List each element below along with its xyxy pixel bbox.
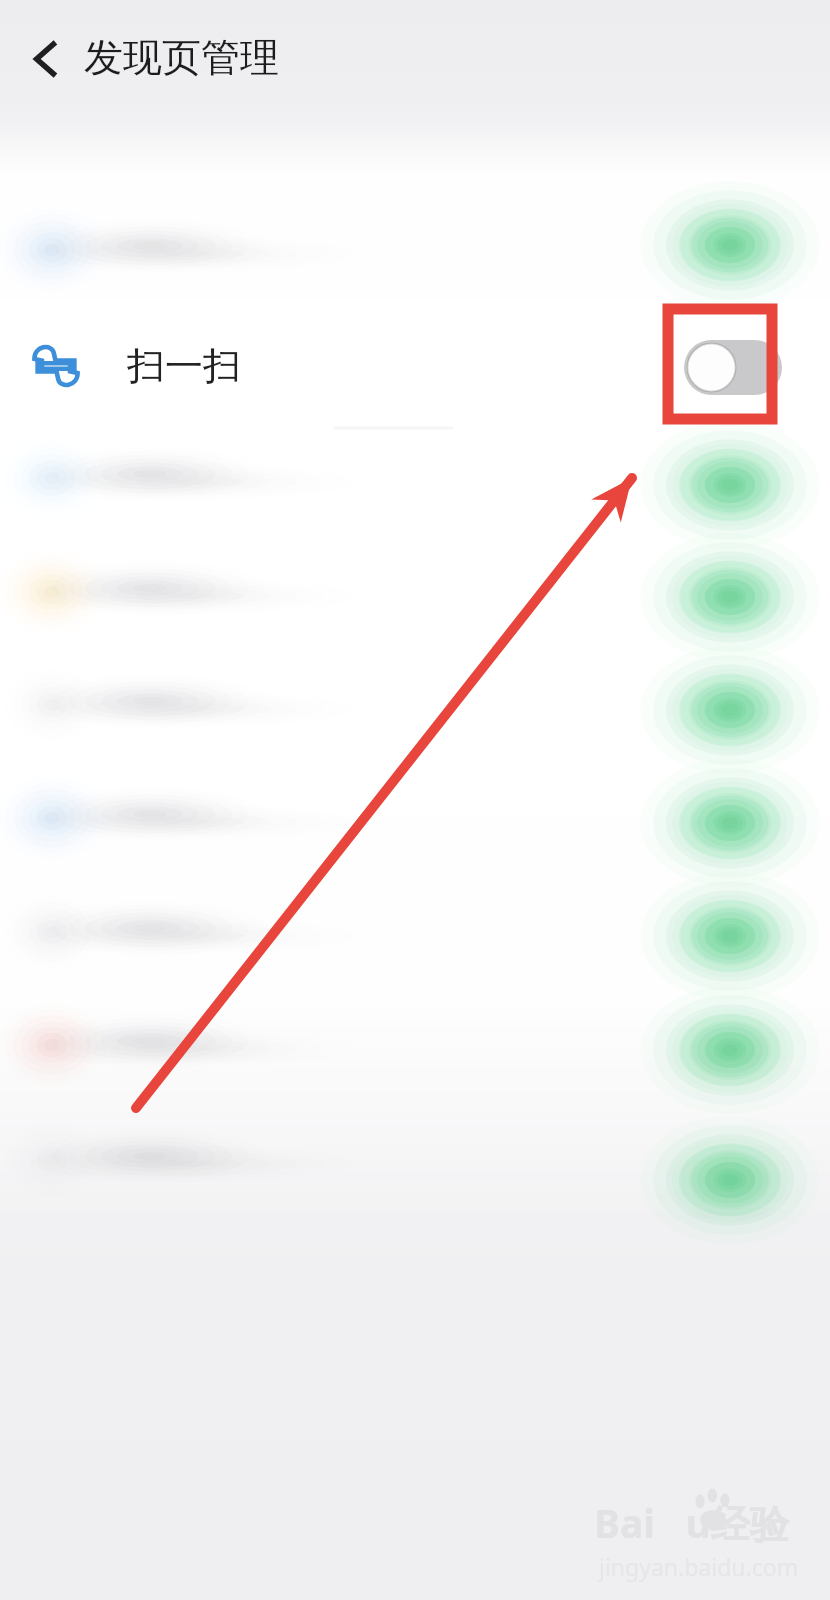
staticText: jingyan.baidu.com bbox=[599, 1551, 799, 1582]
staticText: 发现页管理 bbox=[84, 33, 279, 82]
button[interactable]: 返回 bbox=[8, 20, 86, 98]
button[interactable]: 扫一扫 开关 bbox=[684, 340, 782, 395]
staticText: 扫一扫 bbox=[127, 342, 241, 390]
button[interactable]: 扫一扫 bbox=[0, 313, 830, 419]
staticText: Bai u经验 bbox=[594, 1496, 789, 1549]
